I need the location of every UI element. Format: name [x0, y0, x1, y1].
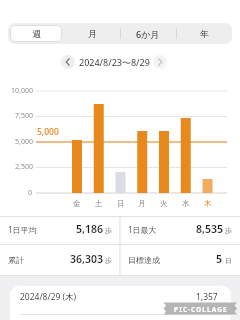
- staticText: 0: [28, 188, 33, 198]
- staticText: 8,535: [196, 222, 223, 236]
- staticText: 5: [216, 252, 223, 266]
- button[interactable]: 週: [8, 23, 64, 44]
- button[interactable]: 6か月: [120, 23, 176, 44]
- staticText: 累計: [8, 255, 24, 265]
- staticText: 週: [32, 28, 41, 39]
- staticText: 年: [200, 28, 209, 39]
- staticText: 10,000: [11, 86, 33, 96]
- staticText: 7,500: [15, 111, 33, 121]
- staticText: 目標達成: [128, 255, 160, 265]
- staticText: 日: [225, 256, 232, 265]
- staticText: 5,186: [76, 222, 103, 236]
- staticText: 2024/8/23〜8/29: [79, 56, 150, 68]
- staticText: 1日最大: [128, 224, 157, 235]
- staticText: 1,357: [196, 291, 218, 303]
- staticText: 5,000: [15, 137, 33, 147]
- staticText: 2024/8/29 (木): [20, 291, 77, 303]
- staticText: PIC·COLLAGE: [174, 305, 228, 314]
- staticText: 月: [138, 199, 146, 208]
- staticText: 土: [95, 199, 103, 208]
- staticText: 木: [204, 199, 212, 208]
- staticText: 水: [182, 199, 190, 208]
- staticText: 月: [88, 28, 97, 39]
- staticText: 6か月: [136, 28, 160, 40]
- staticText: 2,500: [15, 162, 33, 172]
- staticText: 5,000: [37, 126, 59, 137]
- staticText: 36,303: [70, 252, 103, 266]
- button[interactable]: [10, 286, 231, 320]
- button[interactable]: [61, 55, 75, 69]
- button[interactable]: 月: [64, 23, 120, 44]
- staticText: 1日平均: [8, 224, 37, 235]
- button[interactable]: 年: [176, 23, 232, 44]
- button[interactable]: [153, 55, 167, 69]
- button[interactable]: 2024/8/23〜8/29: [74, 53, 154, 71]
- staticText: 歩: [105, 226, 112, 235]
- staticText: 日: [117, 199, 125, 208]
- staticText: 火: [160, 199, 168, 208]
- staticText: 歩: [105, 256, 112, 265]
- staticText: 歩: [225, 226, 232, 235]
- staticText: 金: [73, 199, 81, 208]
